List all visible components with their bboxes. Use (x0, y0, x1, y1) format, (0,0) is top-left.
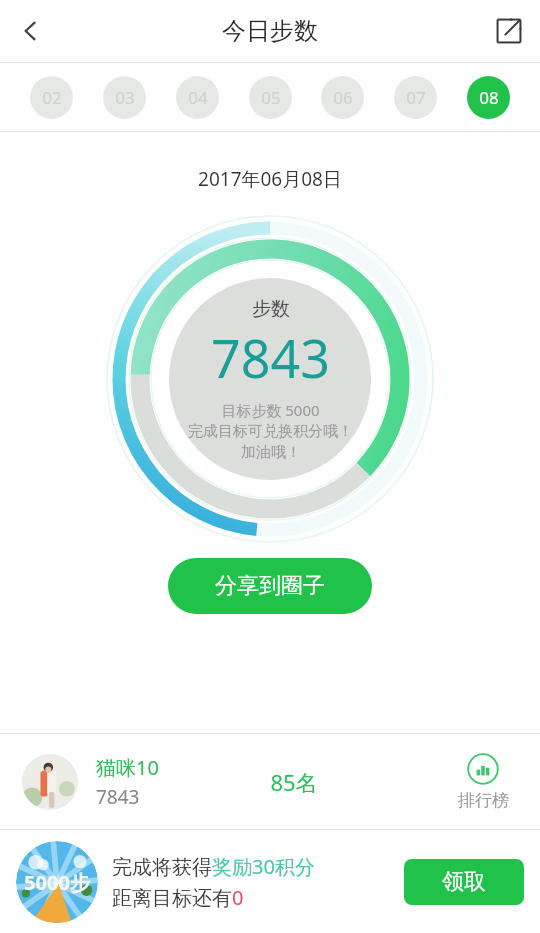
staticText: 2017年06月08日 (198, 166, 342, 192)
button[interactable]: 06 (321, 76, 364, 119)
staticText: 完成目标可兑换积分哦！ (188, 422, 353, 441)
staticText: 85名 (270, 767, 318, 797)
button[interactable]: 08 (467, 76, 510, 119)
staticText: 排行榜 (458, 790, 509, 811)
staticText: 02 (42, 86, 62, 109)
staticText: 完成将获得奖励30积分 (112, 853, 315, 880)
staticText: 距离目标还有0 (112, 884, 244, 911)
button[interactable]: 04 (176, 76, 219, 119)
button[interactable]: 07 (394, 76, 437, 119)
staticText: 7843 (211, 322, 330, 393)
staticText: 加油哦！ (241, 443, 301, 462)
button[interactable]: 02 (30, 76, 73, 119)
button[interactable]: 猫咪10 (0, 734, 540, 829)
staticText: 猫咪10 (96, 754, 159, 781)
staticText: 目标步数 5000 (221, 400, 320, 420)
staticText: 03 (115, 86, 135, 109)
button[interactable]: Back (0, 0, 62, 62)
staticText: 分享到圈子 (215, 572, 325, 600)
staticText: 07 (406, 86, 426, 109)
staticText: 5000步 (24, 869, 90, 896)
button[interactable]: Share (478, 0, 540, 62)
button[interactable]: 03 (103, 76, 146, 119)
staticText: 08 (479, 86, 499, 109)
button[interactable]: 分享到圈子 (168, 558, 372, 614)
button[interactable]: 05 (249, 76, 292, 119)
staticText: 步数 (252, 297, 290, 321)
staticText: 今日步数 (222, 16, 318, 46)
staticText: 06 (333, 86, 353, 109)
staticText: 7843 (96, 784, 140, 810)
staticText: 05 (261, 86, 281, 109)
button[interactable]: 领取 (404, 859, 524, 905)
staticText: 04 (188, 86, 208, 109)
button[interactable]: 排行榜 (440, 753, 526, 811)
staticText: 领取 (442, 868, 486, 896)
